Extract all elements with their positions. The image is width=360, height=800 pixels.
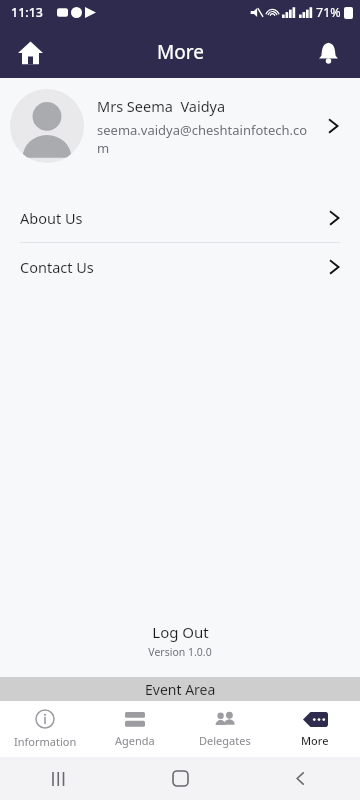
button[interactable]: Information (0, 701, 90, 757)
staticText: seema.vaidya@cheshtainfotech.com (97, 121, 316, 157)
staticText: More (301, 733, 329, 748)
staticText: Agenda (115, 733, 155, 748)
staticText: Information (14, 734, 77, 749)
button[interactable]: About Us (0, 194, 360, 243)
staticText: Version 1.0.0 (148, 645, 212, 659)
staticText: Mrs Seema Vaidya (97, 96, 226, 116)
staticText: 11:13 (11, 4, 44, 21)
button[interactable]: Home (8, 30, 52, 74)
button[interactable]: Mrs Seema Vaidya (0, 78, 360, 174)
staticText: About Us (20, 208, 326, 228)
button[interactable]: Agenda (90, 701, 180, 757)
staticText: Event Area (145, 680, 216, 699)
button[interactable]: Notifications (306, 30, 350, 74)
staticText: Contact Us (20, 257, 326, 277)
button[interactable]: Delegates (180, 701, 270, 757)
button[interactable]: Contact Us (0, 243, 360, 291)
staticText: Delegates (199, 733, 251, 748)
staticText: 71% (316, 4, 341, 21)
button[interactable]: More (270, 701, 360, 757)
staticText: More (157, 39, 204, 65)
staticText: Log Out (152, 622, 209, 642)
button[interactable]: Log Out (0, 618, 360, 663)
